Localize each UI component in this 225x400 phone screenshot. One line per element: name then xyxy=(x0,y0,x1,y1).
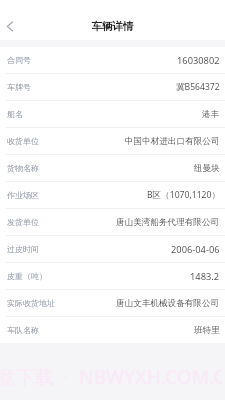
button[interactable]: 车队名称 xyxy=(0,317,225,343)
staticText: B区（1070,1120） xyxy=(147,189,220,201)
button[interactable]: 车牌号 xyxy=(0,74,225,100)
staticText: 2006-04-06 xyxy=(171,243,220,256)
staticText: 货物名称 xyxy=(7,163,39,173)
button[interactable]: 实际收货地址 xyxy=(0,290,225,316)
staticText: 皮重（吨） xyxy=(7,271,47,281)
button[interactable]: 过皮时间 xyxy=(0,236,225,262)
staticText: 实际收货地址 xyxy=(7,298,55,308)
staticText: 中国中材进出口有限公司 xyxy=(125,136,220,147)
staticText: 合同号 xyxy=(7,55,31,65)
staticText: 收货单位 xyxy=(7,136,39,146)
staticText: 车队名称 xyxy=(7,325,39,335)
staticText: 班特里 xyxy=(194,325,220,336)
staticText: 作业场区 xyxy=(7,190,39,200)
staticText: 港丰 xyxy=(202,109,220,120)
staticText: 16030802 xyxy=(177,54,220,67)
button[interactable]: 收货单位 xyxy=(0,128,225,154)
button[interactable]: 作业场区 xyxy=(0,182,225,208)
button[interactable]: 船名 xyxy=(0,101,225,127)
staticText: 冀B564372 xyxy=(176,81,220,93)
staticText: 唐山美湾船务代理有限公司 xyxy=(116,217,220,228)
button[interactable]: 货物名称 xyxy=(0,155,225,181)
staticText: 车牌号 xyxy=(7,82,31,92)
staticText: 过皮时间 xyxy=(7,244,39,254)
staticText: 车辆详情 xyxy=(0,20,225,33)
button[interactable]: 发货单位 xyxy=(0,209,225,235)
staticText: 纽曼块 xyxy=(194,163,220,174)
staticText: 唐山文丰机械设备有限公司 xyxy=(116,298,220,309)
button[interactable]: 皮重（吨） xyxy=(0,263,225,289)
staticText: 发货单位 xyxy=(7,217,39,227)
staticText: 意下载 · NBWYXH.COM.CN xyxy=(0,364,222,390)
staticText: 1483.2 xyxy=(190,270,220,283)
button[interactable]: 合同号 xyxy=(0,47,225,73)
staticText: 船名 xyxy=(7,109,23,119)
button[interactable]: Back xyxy=(0,12,24,36)
